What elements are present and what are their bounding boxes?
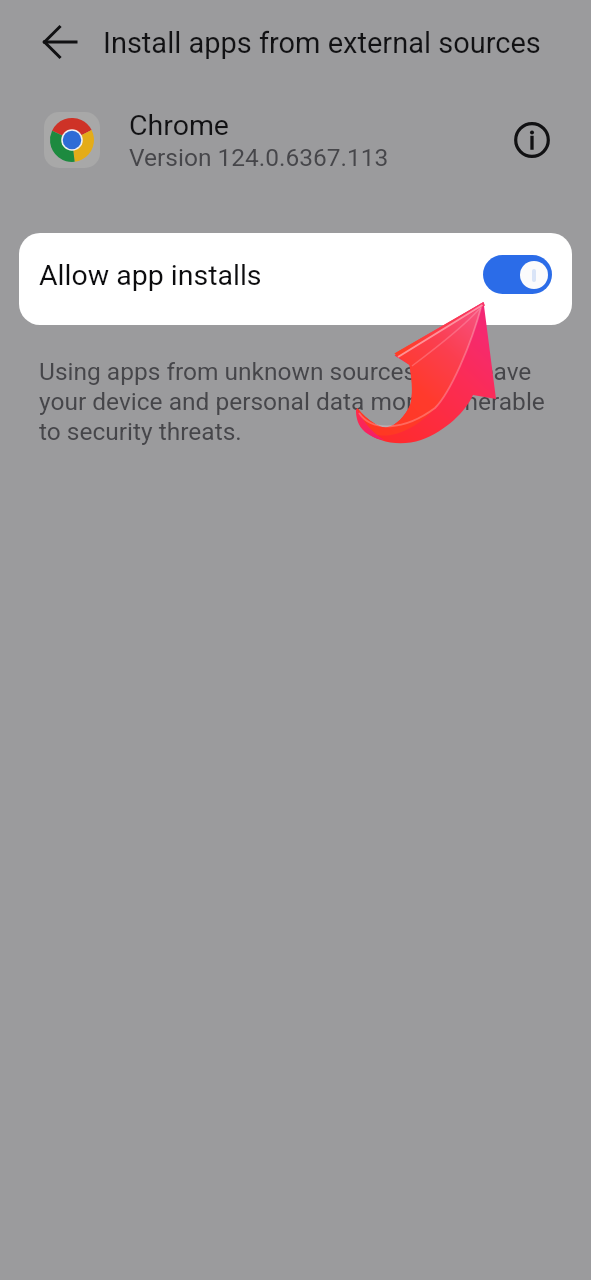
staticText: Version 124.0.6367.113 — [129, 143, 389, 172]
staticText: Allow app installs — [39, 259, 262, 292]
staticText: Using apps from unknown sources may leav… — [39, 357, 551, 446]
button[interactable]: Allow app installs toggle — [483, 255, 552, 294]
staticText: Install apps from external sources — [103, 26, 541, 60]
button[interactable]: App info — [509, 117, 554, 162]
button[interactable]: Back — [36, 18, 83, 65]
button[interactable]: Allow app installs — [19, 233, 572, 325]
staticText: Chrome — [129, 109, 229, 142]
